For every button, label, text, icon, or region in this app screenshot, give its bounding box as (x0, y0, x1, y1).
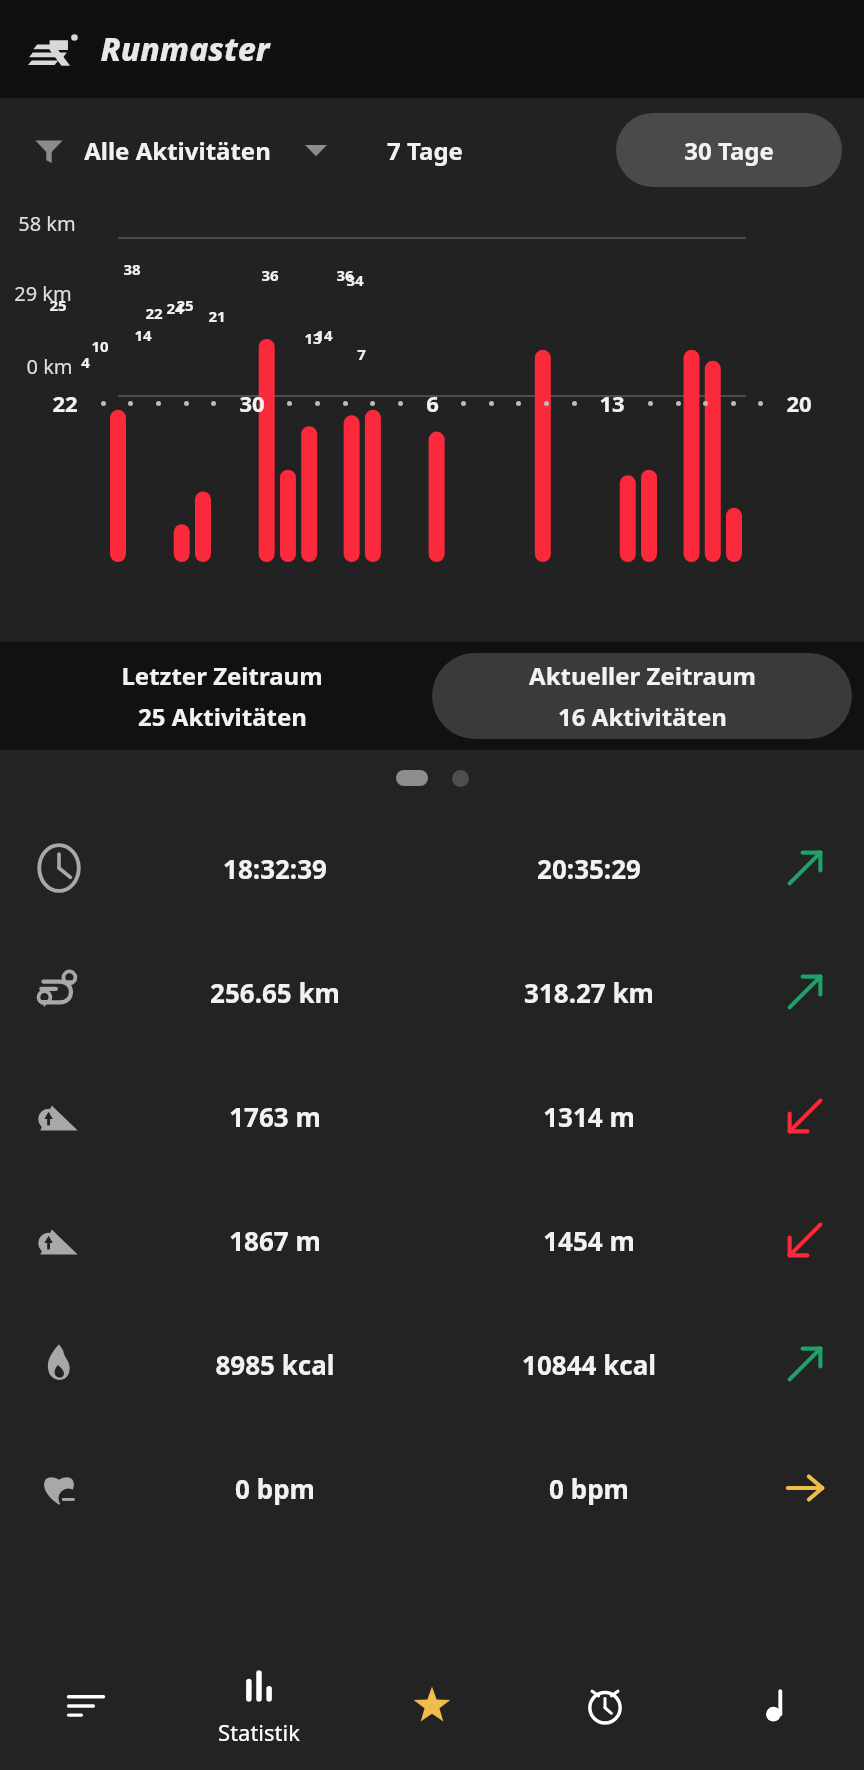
staticText: 25 Aktivitäten (138, 700, 307, 733)
staticText: 22 (145, 303, 163, 323)
button[interactable]: Statistik (172, 1640, 345, 1770)
staticText: 24 (166, 298, 184, 318)
staticText: 256.65 km (210, 975, 340, 1010)
staticText: 34 (346, 270, 364, 290)
staticText: 318.27 km (524, 975, 654, 1010)
staticText: 1454 m (543, 1223, 635, 1258)
staticText: Statistik (218, 1717, 300, 1747)
button[interactable]: flame (0, 1302, 864, 1426)
staticText: 30 Tage (684, 134, 774, 167)
button[interactable]: Aktueller Zeitraum (432, 653, 852, 739)
staticText: 4 (81, 352, 90, 372)
staticText: 20:35:29 (537, 851, 641, 886)
staticText: Alle Aktivitäten (84, 134, 271, 167)
other: mtn (33, 1090, 85, 1142)
other: route (33, 966, 85, 1018)
button[interactable]: mtn (0, 1054, 864, 1178)
button[interactable]: clock (0, 806, 864, 930)
staticText: 16 Aktivitäten (558, 700, 727, 733)
other: heart (33, 1462, 85, 1514)
staticText: 30 (239, 388, 265, 418)
other: trend (781, 844, 829, 892)
staticText: Aktueller Zeitraum (529, 659, 756, 692)
button[interactable]: sort (0, 1640, 172, 1770)
staticText: 25 (49, 295, 67, 315)
button[interactable]: mtn (0, 1178, 864, 1302)
staticText: 14 (315, 325, 333, 345)
staticText: Letzter Zeitraum (121, 659, 323, 692)
staticText: 7 (357, 344, 366, 364)
staticText: 14 (134, 325, 152, 345)
button[interactable]: route (0, 930, 864, 1054)
staticText: 18:32:39 (223, 851, 327, 886)
staticText: 36 (261, 265, 279, 285)
staticText: 25 (176, 295, 194, 315)
button[interactable]: star (345, 1640, 518, 1770)
button[interactable]: Letzter Zeitraum (12, 653, 432, 739)
button[interactable]: heart (0, 1426, 864, 1550)
other: clock (33, 842, 85, 894)
staticText: 1867 m (229, 1223, 321, 1258)
staticText: 10844 kcal (522, 1347, 656, 1382)
other: trend (781, 1216, 829, 1264)
staticText: 29 km (14, 280, 72, 307)
other: trend (781, 1464, 829, 1512)
button[interactable]: alarm (518, 1640, 691, 1770)
staticText: 0 bpm (235, 1471, 315, 1506)
staticText: 13 (304, 328, 322, 348)
staticText: 58 km (18, 210, 76, 237)
staticText: 10 (91, 336, 109, 356)
other: mtn (33, 1214, 85, 1266)
staticText: 0 km (26, 353, 73, 380)
other: trend (781, 968, 829, 1016)
staticText: 20 (786, 388, 812, 418)
staticText: 8985 kcal (215, 1347, 335, 1382)
staticText: 1314 m (543, 1099, 635, 1134)
staticText: 21 (208, 306, 226, 326)
button[interactable]: 30 Tage (616, 113, 842, 187)
staticText: 38 (123, 259, 141, 279)
staticText: 22 (52, 388, 78, 418)
button[interactable]: 7 Tage (365, 120, 485, 181)
other: flame (33, 1338, 85, 1390)
staticText: 7 Tage (387, 134, 463, 167)
other: trend (781, 1340, 829, 1388)
button[interactable]: Alle Aktivitäten (22, 125, 337, 175)
staticText: 0 bpm (549, 1471, 629, 1506)
button[interactable]: music (691, 1640, 864, 1770)
staticText: 36 (336, 265, 354, 285)
staticText: Runmaster (100, 27, 270, 71)
staticText: 1763 m (229, 1099, 321, 1134)
other: trend (781, 1092, 829, 1140)
staticText: 6 (426, 388, 439, 418)
staticText: 13 (599, 388, 625, 418)
